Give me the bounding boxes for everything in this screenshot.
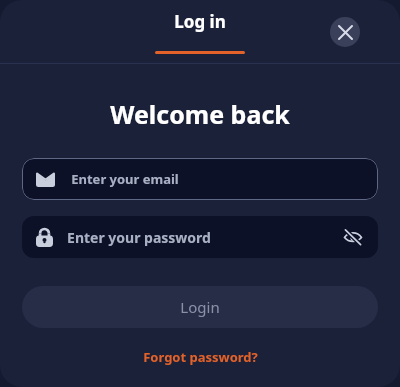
staticText: Welcome back bbox=[110, 97, 290, 131]
button[interactable]: Show password bbox=[340, 224, 366, 250]
staticText: Log in bbox=[174, 10, 226, 33]
button[interactable]: Close bbox=[330, 17, 360, 47]
staticText: Login bbox=[180, 297, 220, 317]
staticText: Forgot password? bbox=[143, 348, 258, 366]
staticText: Enter your email bbox=[71, 170, 179, 188]
button[interactable]: Login bbox=[22, 286, 378, 328]
button[interactable]: Enter your password bbox=[22, 216, 378, 258]
button[interactable]: Enter your email bbox=[22, 158, 378, 200]
button[interactable]: Log in bbox=[155, 10, 245, 54]
staticText: Enter your password bbox=[67, 228, 211, 247]
button[interactable]: Forgot password? bbox=[135, 346, 266, 368]
